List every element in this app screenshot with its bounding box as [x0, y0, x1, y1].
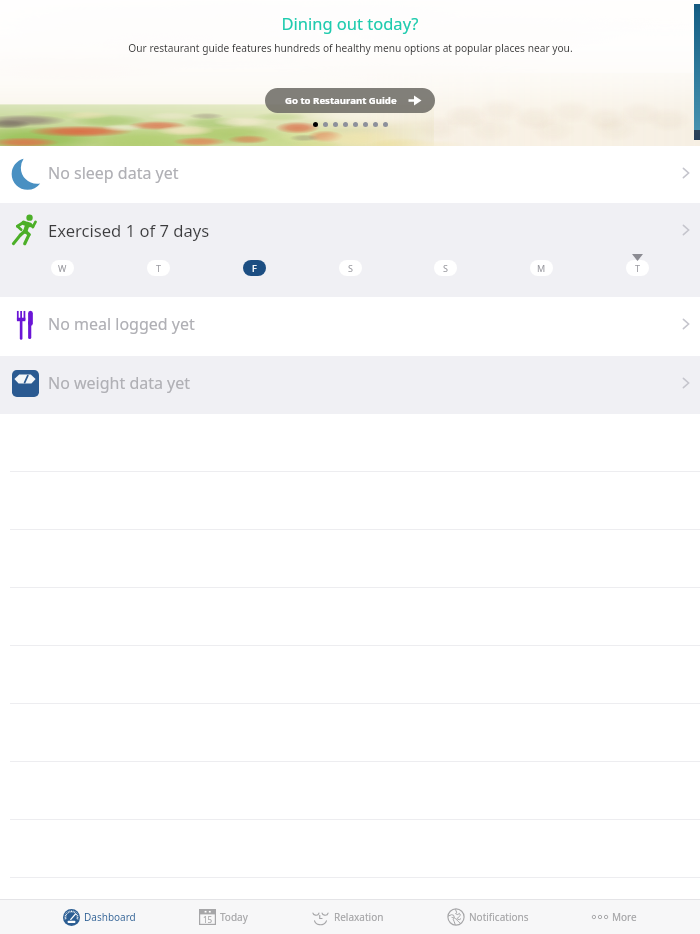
staticText: More: [612, 910, 637, 924]
button[interactable]: Notifications: [447, 900, 529, 934]
staticText: S: [348, 262, 353, 274]
staticText: Notifications: [469, 910, 529, 924]
staticText: No sleep data yet: [48, 162, 179, 184]
button[interactable]: T: [626, 260, 649, 276]
button[interactable]: Go to Restaurant Guide: [265, 88, 435, 113]
button[interactable]: Relaxation: [311, 900, 384, 934]
button[interactable]: Exercised 1 of 7 days: [0, 203, 700, 297]
staticText: T: [635, 262, 641, 274]
staticText: S: [443, 262, 448, 274]
button[interactable]: No weight data yet: [0, 356, 700, 414]
button[interactable]: No sleep data yet: [0, 146, 700, 203]
button[interactable]: M: [530, 260, 553, 276]
staticText: 15: [203, 914, 213, 925]
staticText: Exercised 1 of 7 days: [48, 219, 210, 242]
staticText: Dining out today?: [281, 12, 419, 34]
staticText: T: [156, 262, 162, 274]
staticText: No meal logged yet: [48, 313, 195, 335]
staticText: M: [537, 262, 546, 274]
staticText: F: [252, 262, 257, 274]
button[interactable]: Dashboard: [63, 900, 136, 934]
button[interactable]: No meal logged yet: [0, 297, 700, 356]
button[interactable]: S: [434, 260, 457, 276]
staticText: Go to Restaurant Guide: [285, 94, 397, 107]
button[interactable]: S: [339, 260, 362, 276]
staticText: Relaxation: [334, 910, 384, 924]
staticText: W: [58, 262, 67, 274]
staticText: Today: [220, 910, 248, 924]
staticText: Dashboard: [84, 910, 136, 924]
button[interactable]: T: [147, 260, 170, 276]
staticText: No weight data yet: [48, 372, 191, 394]
button[interactable]: F: [243, 260, 266, 276]
staticText: Our restaurant guide features hundreds o…: [128, 41, 573, 55]
button[interactable]: More: [592, 900, 637, 934]
button[interactable]: W: [51, 260, 74, 276]
button[interactable]: 15: [199, 900, 248, 934]
